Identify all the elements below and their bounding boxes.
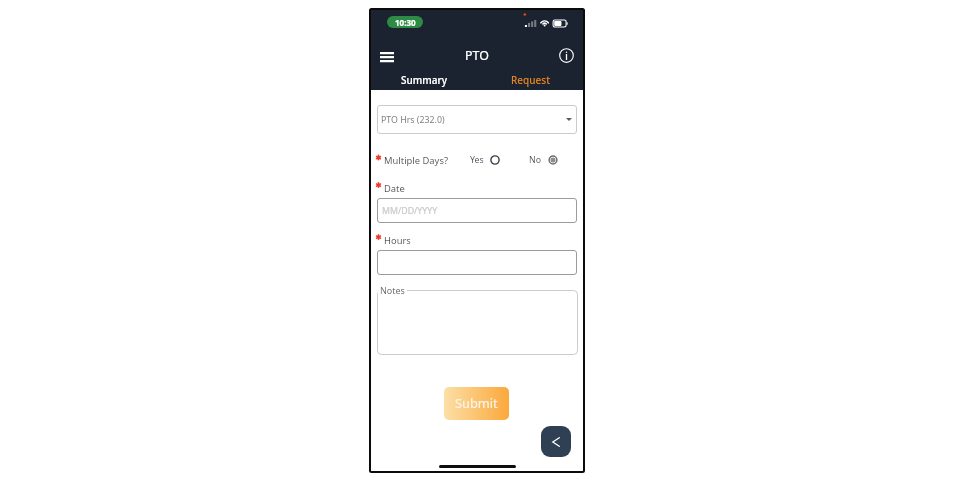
staticText: Notes	[380, 284, 405, 296]
button[interactable]: No	[529, 154, 558, 166]
staticText: Yes	[470, 154, 484, 166]
button[interactable]	[377, 290, 578, 355]
staticText: 10:30	[395, 17, 416, 28]
button[interactable]: Information	[553, 44, 579, 66]
staticText: Submit	[455, 394, 498, 411]
staticText: Summary	[401, 73, 447, 87]
staticText: Date	[384, 182, 405, 193]
staticText: Multiple Days?	[384, 154, 448, 167]
button[interactable]: PTO Hrs (232.0)	[377, 105, 577, 134]
button[interactable]	[377, 250, 577, 275]
button[interactable]: Summary	[370, 70, 477, 89]
staticText: Request	[511, 73, 550, 87]
button[interactable]: Back	[541, 426, 571, 457]
button[interactable]: MM/DD/YYYY	[377, 198, 577, 223]
staticText: MM/DD/YYYY	[382, 205, 438, 217]
staticText: PTO	[465, 47, 489, 64]
staticText: Hours	[384, 234, 411, 245]
button[interactable]: Open navigation menu	[373, 46, 401, 68]
staticText: No	[529, 154, 542, 166]
button[interactable]: Submit	[444, 387, 509, 420]
button[interactable]: Request	[477, 70, 584, 89]
staticText: PTO Hrs (232.0)	[381, 114, 445, 126]
button[interactable]: Yes	[470, 154, 500, 166]
